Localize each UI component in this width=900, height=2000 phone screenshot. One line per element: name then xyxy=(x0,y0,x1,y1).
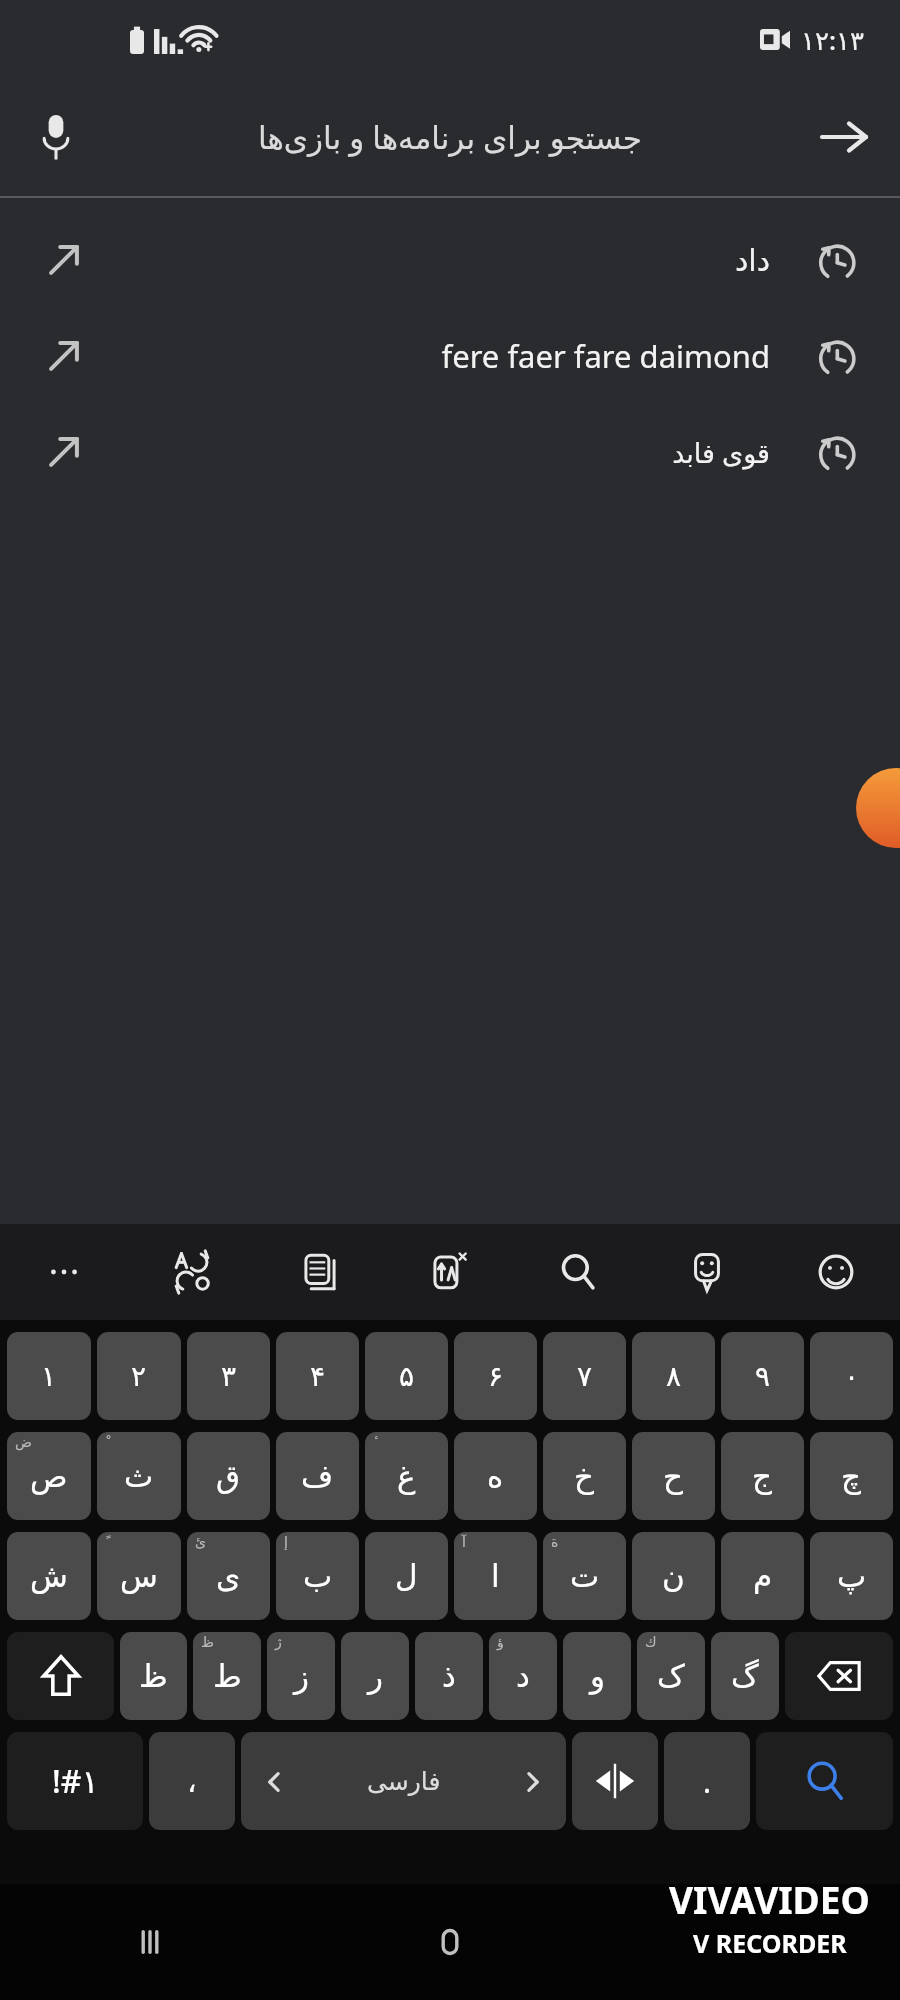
button[interactable]: ن xyxy=(632,1532,715,1620)
staticText: ذ xyxy=(442,1658,456,1694)
staticText: ز xyxy=(294,1658,309,1694)
button[interactable]: ش xyxy=(7,1532,91,1620)
staticText: ۱ xyxy=(41,1360,57,1393)
button[interactable]: Emoji xyxy=(771,1224,900,1320)
button[interactable]: ج xyxy=(721,1432,804,1520)
button[interactable]: م xyxy=(721,1532,804,1620)
button[interactable]: ئ xyxy=(187,1532,270,1620)
button[interactable]: Submit search xyxy=(788,78,900,196)
button[interactable]: ً xyxy=(97,1532,181,1620)
button[interactable]: Home xyxy=(300,1884,600,2000)
button[interactable]: ه xyxy=(454,1432,537,1520)
staticText: ح xyxy=(663,1458,684,1494)
button[interactable]: چ xyxy=(810,1432,893,1520)
button[interactable]: ۸ xyxy=(632,1332,715,1420)
button[interactable]: Shift xyxy=(7,1632,114,1720)
button[interactable]: Text extraction xyxy=(384,1224,513,1320)
staticText: ق xyxy=(216,1458,241,1494)
button[interactable]: Text direction xyxy=(572,1732,658,1830)
button[interactable]: ر xyxy=(341,1632,409,1720)
button[interactable]: Clipboard xyxy=(256,1224,384,1320)
staticText: . xyxy=(703,1761,712,1802)
staticText: ۵ xyxy=(399,1360,415,1393)
button[interactable]: Space, Persian layout xyxy=(241,1732,566,1830)
staticText: ل xyxy=(395,1558,418,1594)
staticText: ئ xyxy=(195,1534,206,1550)
button[interactable]: ۶ xyxy=(454,1332,537,1420)
button[interactable]: ۳ xyxy=(187,1332,270,1420)
staticText: داد xyxy=(734,243,770,278)
staticText: ۳ xyxy=(221,1360,237,1393)
button[interactable]: ۷ xyxy=(543,1332,626,1420)
staticText: fere faer fare daimond xyxy=(441,335,770,377)
button[interactable]: fere faer fare daimond xyxy=(0,308,900,404)
button[interactable]: قوی فابد xyxy=(0,404,900,500)
button[interactable]: !#۱ xyxy=(7,1732,143,1830)
button[interactable]: و xyxy=(563,1632,631,1720)
button[interactable]: ؤ xyxy=(489,1632,557,1720)
staticText: ظ xyxy=(201,1634,214,1650)
button[interactable]: . xyxy=(664,1732,750,1830)
staticText: ۷ xyxy=(577,1360,593,1393)
staticText: ج xyxy=(752,1458,773,1494)
button[interactable]: ف xyxy=(276,1432,359,1520)
button[interactable]: ض xyxy=(7,1432,91,1520)
button[interactable]: ة xyxy=(543,1532,626,1620)
button[interactable]: Backspace xyxy=(785,1632,893,1720)
staticText: ۶ xyxy=(488,1360,504,1393)
staticText: و xyxy=(590,1658,605,1694)
button[interactable]: ۹ xyxy=(721,1332,804,1420)
button[interactable]: إ xyxy=(276,1532,359,1620)
button[interactable]: ح xyxy=(632,1432,715,1520)
button[interactable]: ۵ xyxy=(365,1332,448,1420)
button[interactable]: ك xyxy=(637,1632,705,1720)
button[interactable]: ل xyxy=(365,1532,448,1620)
staticText: چ xyxy=(841,1458,862,1494)
button[interactable]: ْ xyxy=(97,1432,181,1520)
button[interactable]: Stickers xyxy=(642,1224,771,1320)
staticText: ژ xyxy=(275,1634,282,1650)
staticText: ۲ xyxy=(131,1360,147,1393)
staticText: ظ xyxy=(139,1658,168,1694)
button[interactable]: ق xyxy=(187,1432,270,1520)
staticText: قوی فابد xyxy=(672,434,770,471)
button[interactable]: Recents xyxy=(0,1884,300,2000)
button[interactable]: ۲ xyxy=(97,1332,181,1420)
button[interactable]: داد xyxy=(0,212,900,308)
button[interactable]: ۱ xyxy=(7,1332,91,1420)
staticText: جستجو برای برنامه‌ها و بازی‌ها xyxy=(258,116,642,158)
staticText: !#۱ xyxy=(52,1759,99,1803)
button[interactable]: ۴ xyxy=(276,1332,359,1420)
staticText: ة xyxy=(551,1534,559,1550)
staticText: ث xyxy=(124,1458,154,1494)
staticText: ف xyxy=(301,1458,334,1494)
button[interactable]: آ xyxy=(454,1532,537,1620)
staticText: ص xyxy=(30,1458,68,1494)
staticText: ه xyxy=(487,1458,504,1494)
button[interactable]: Search xyxy=(756,1732,893,1830)
button[interactable]: More options xyxy=(0,1224,128,1320)
staticText: د xyxy=(516,1658,530,1694)
button[interactable]: ذ xyxy=(415,1632,483,1720)
button[interactable]: ، xyxy=(149,1732,235,1830)
button[interactable]: جستجو برای برنامه‌ها و بازی‌ها xyxy=(112,78,788,196)
button[interactable]: پ xyxy=(810,1532,893,1620)
staticText: ۸ xyxy=(666,1360,682,1393)
button[interactable]: ظ xyxy=(193,1632,261,1720)
staticText: إ xyxy=(284,1534,288,1550)
button[interactable]: ٔ xyxy=(365,1432,448,1520)
button[interactable]: Translate xyxy=(128,1224,256,1320)
staticText: فارسی xyxy=(367,1767,441,1796)
button[interactable]: ۰ xyxy=(810,1332,893,1420)
staticText: ؤ xyxy=(497,1634,504,1650)
button[interactable]: گ xyxy=(711,1632,779,1720)
staticText: ، xyxy=(187,1764,197,1799)
staticText: گ xyxy=(731,1658,759,1694)
button[interactable]: ظ xyxy=(120,1632,187,1720)
button[interactable]: Floating assistant xyxy=(856,768,900,848)
button[interactable]: خ xyxy=(543,1432,626,1520)
button[interactable]: Search xyxy=(513,1224,642,1320)
button[interactable]: ژ xyxy=(267,1632,335,1720)
button[interactable]: Voice search xyxy=(0,78,112,196)
staticText: ک xyxy=(657,1658,685,1694)
